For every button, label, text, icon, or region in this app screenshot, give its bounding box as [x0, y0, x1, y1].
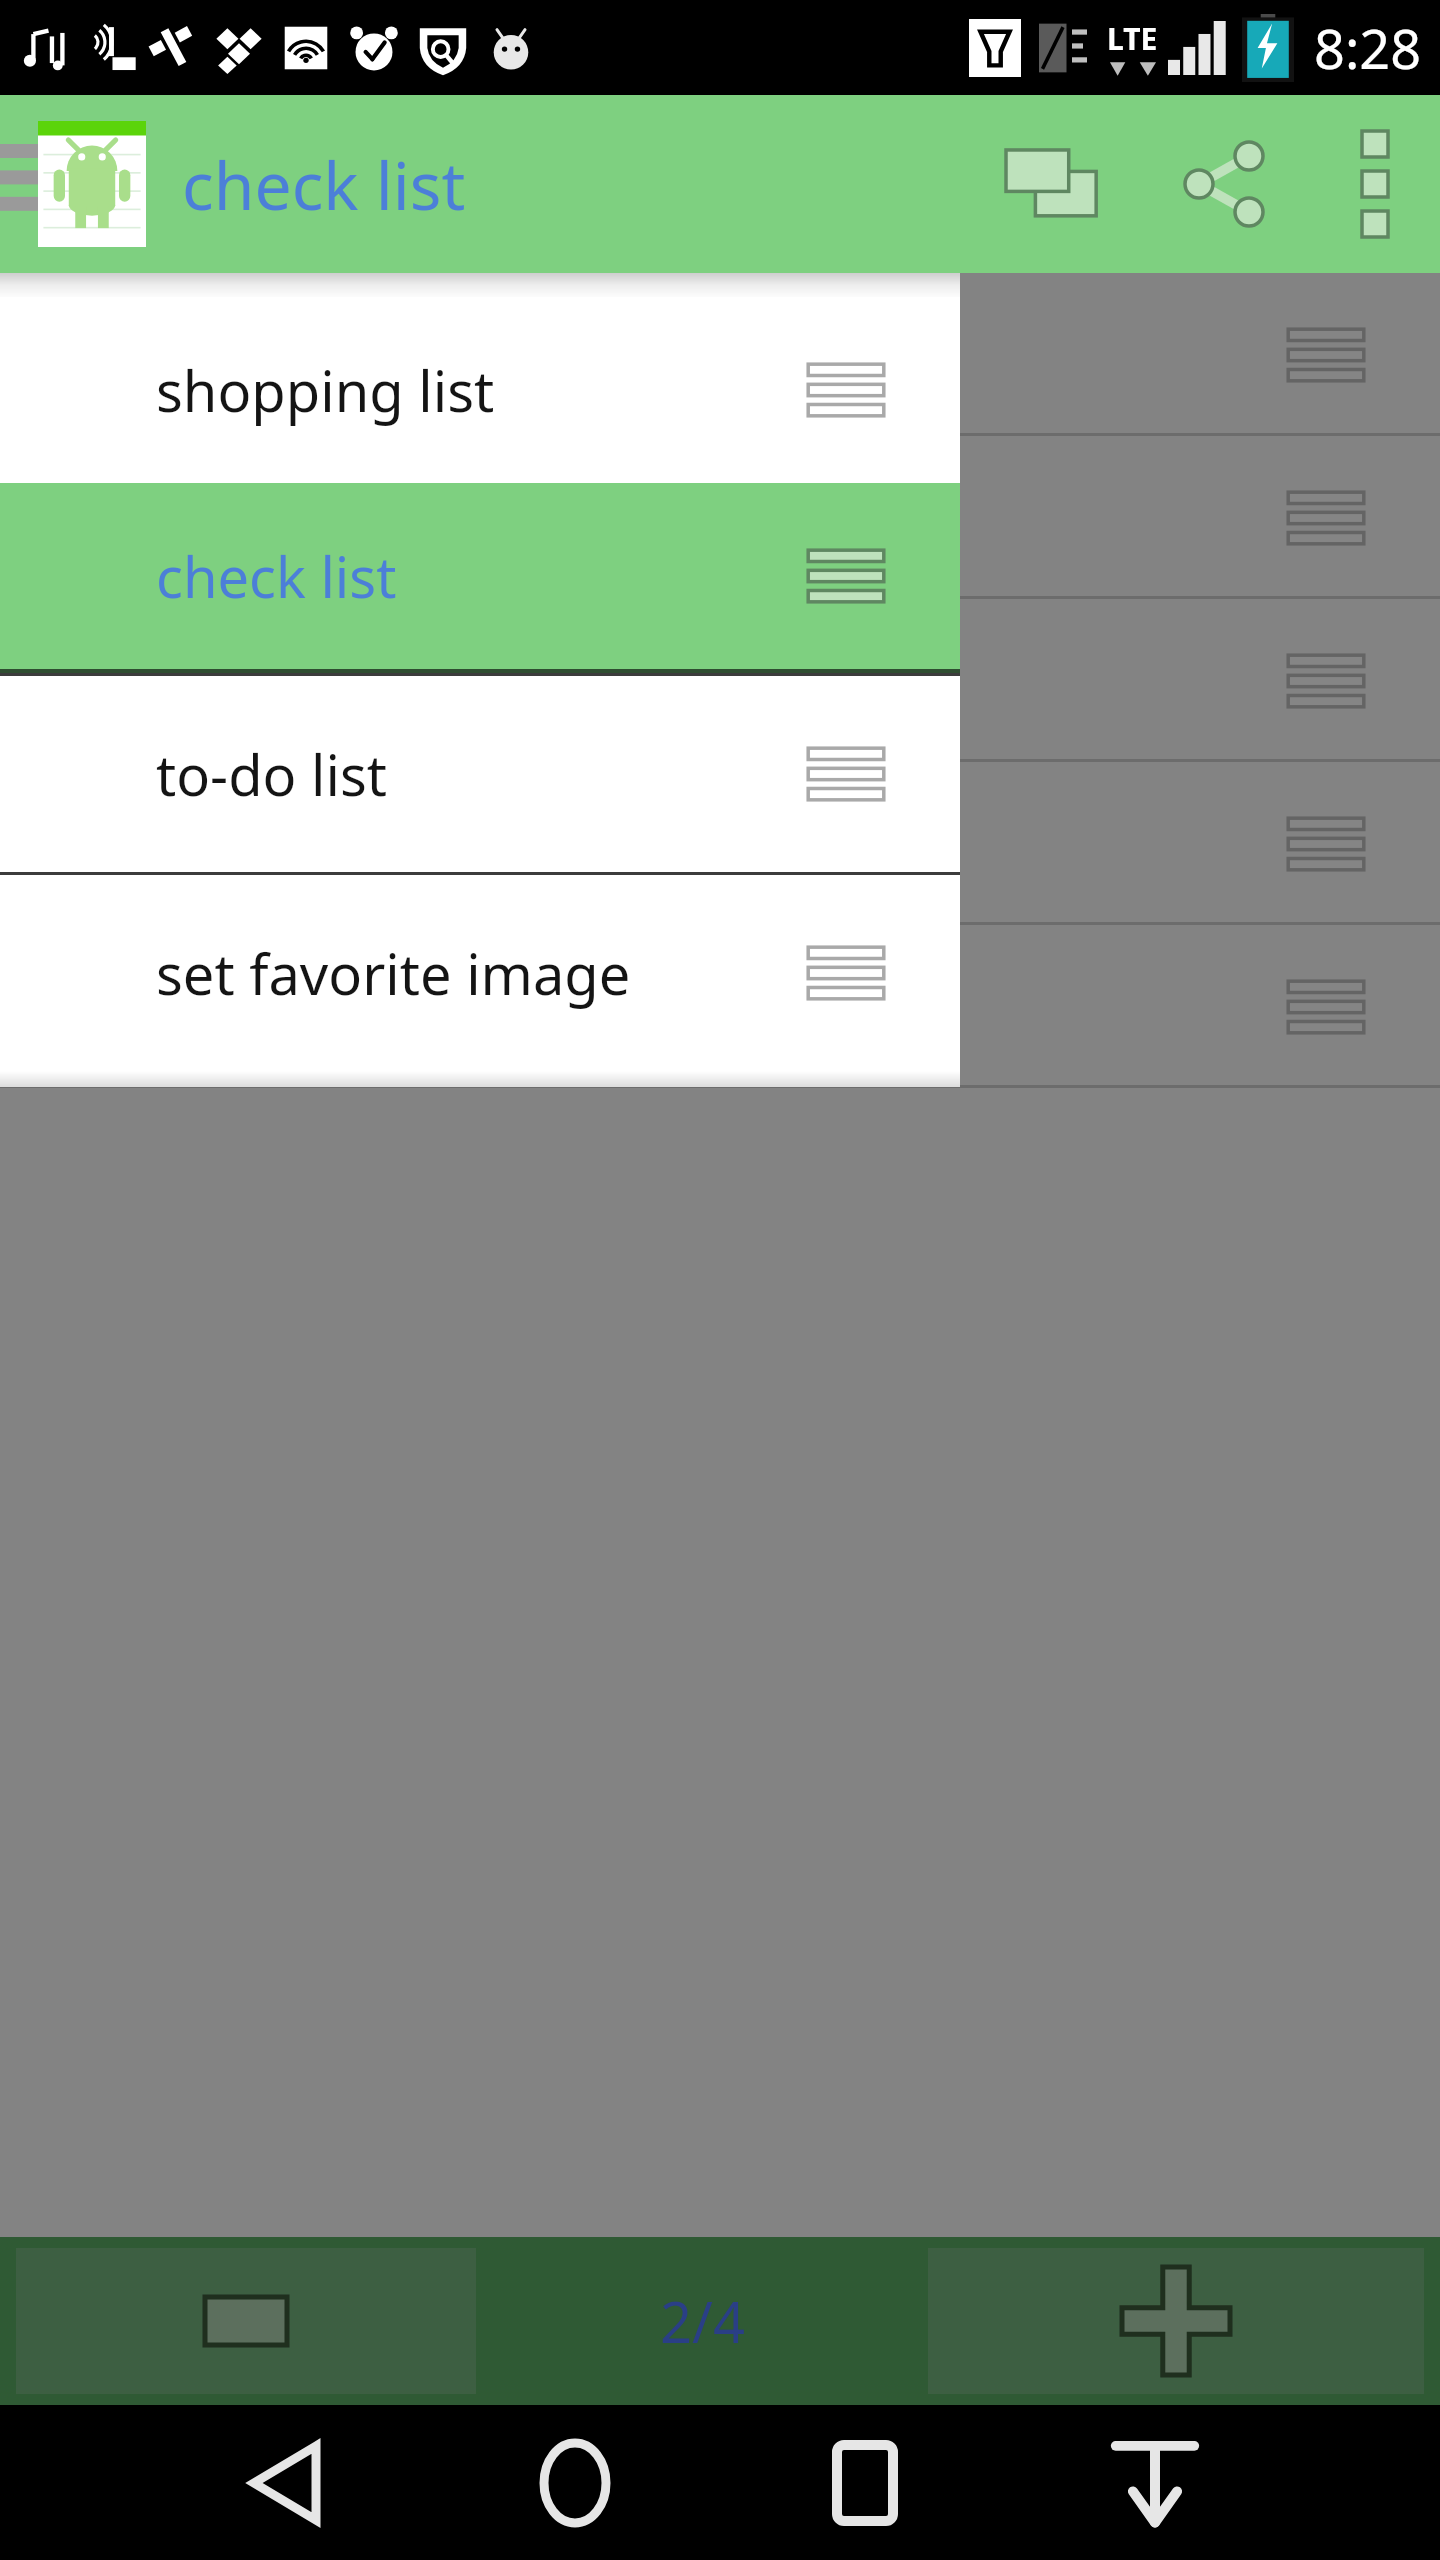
button[interactable]: Open navigation drawer [0, 119, 44, 249]
staticText: to-do list [156, 736, 387, 812]
button[interactable]: Add item [928, 2248, 1424, 2394]
button[interactable]: to-do list [0, 676, 960, 872]
staticText: shopping list [156, 352, 495, 428]
button[interactable]: Copy list [972, 95, 1138, 273]
button[interactable]: Back [200, 2405, 370, 2560]
button[interactable]: More options [1310, 95, 1440, 273]
button[interactable]: shopping list [0, 297, 960, 483]
staticText: 2/4 [660, 2283, 745, 2359]
staticText: check list [182, 139, 466, 229]
button[interactable]: Share [1138, 95, 1310, 273]
button[interactable]: check list [0, 483, 960, 669]
button[interactable]: Home [490, 2405, 660, 2560]
button[interactable]: Recent apps [780, 2405, 950, 2560]
staticText: set favorite image [156, 935, 631, 1011]
button[interactable]: 2/4 [492, 2237, 912, 2405]
button[interactable]: Remove item [16, 2248, 476, 2394]
button[interactable]: Hide navigation bar [1070, 2405, 1240, 2560]
staticText: 8:28 [1314, 11, 1422, 85]
button[interactable]: set favorite image [0, 875, 960, 1071]
staticText: LTE [1107, 18, 1158, 59]
staticText: check list [156, 538, 397, 614]
